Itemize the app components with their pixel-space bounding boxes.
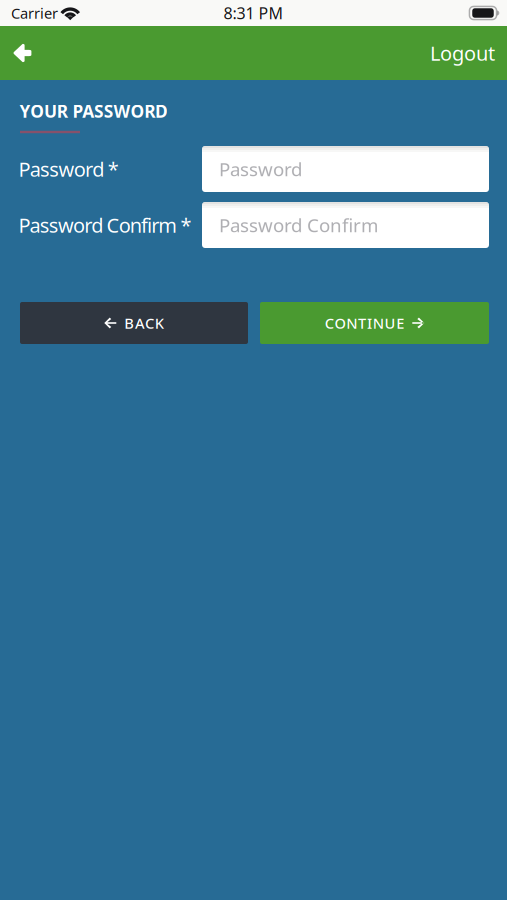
staticText: Password (219, 157, 302, 181)
button[interactable]: BACK (20, 302, 248, 344)
button[interactable]: Back (1, 26, 45, 80)
staticText: Password * (18, 156, 119, 182)
button[interactable]: Logout (0, 26, 507, 80)
staticText: Carrier (11, 3, 58, 23)
button[interactable]: CONTINUE (260, 302, 489, 344)
staticText: CONTINUE (325, 313, 404, 333)
button[interactable]: Password (202, 146, 489, 192)
staticText: Password Confirm * (18, 212, 191, 238)
staticText: Logout (430, 40, 495, 66)
staticText: 8:31 PM (223, 2, 283, 24)
staticText: BACK (124, 313, 164, 333)
button[interactable]: Password Confirm (202, 202, 489, 248)
staticText: YOUR PASSWORD (19, 99, 168, 122)
staticText: Password Confirm (219, 213, 378, 237)
